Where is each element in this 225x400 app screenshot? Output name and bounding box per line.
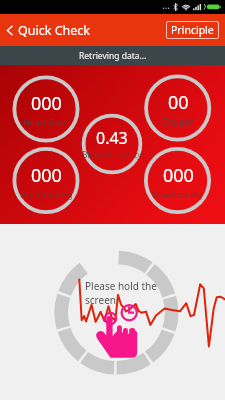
staticText: Quick Check bbox=[18, 22, 90, 39]
staticText: 0.43 bbox=[96, 127, 128, 149]
button[interactable]: 000 bbox=[133, 156, 223, 206]
staticText: Please hold the bbox=[85, 279, 157, 293]
other: Back bbox=[5, 24, 14, 37]
staticText: 000 bbox=[31, 163, 62, 188]
button[interactable]: 000 bbox=[1, 84, 91, 134]
staticText: Blood Viscosity bbox=[82, 149, 142, 161]
button[interactable]: Back bbox=[0, 22, 98, 39]
button[interactable]: 0.43 bbox=[67, 119, 157, 169]
staticText: Low/mmHg bbox=[153, 188, 203, 200]
staticText: screen bbox=[85, 293, 116, 307]
staticText: Principle bbox=[171, 23, 214, 37]
staticText: Oxygen bbox=[162, 115, 195, 127]
button[interactable]: Principle bbox=[166, 21, 219, 39]
staticText: 000 bbox=[163, 163, 194, 188]
staticText: 000 bbox=[31, 91, 62, 116]
staticText: 00 bbox=[168, 90, 189, 115]
button[interactable]: 00 bbox=[133, 83, 223, 133]
button[interactable]: 000 bbox=[1, 156, 91, 206]
staticText: High/mmHg bbox=[20, 188, 73, 200]
staticText: Heart Rate bbox=[23, 116, 69, 128]
staticText: Retrieving data... bbox=[79, 50, 147, 62]
